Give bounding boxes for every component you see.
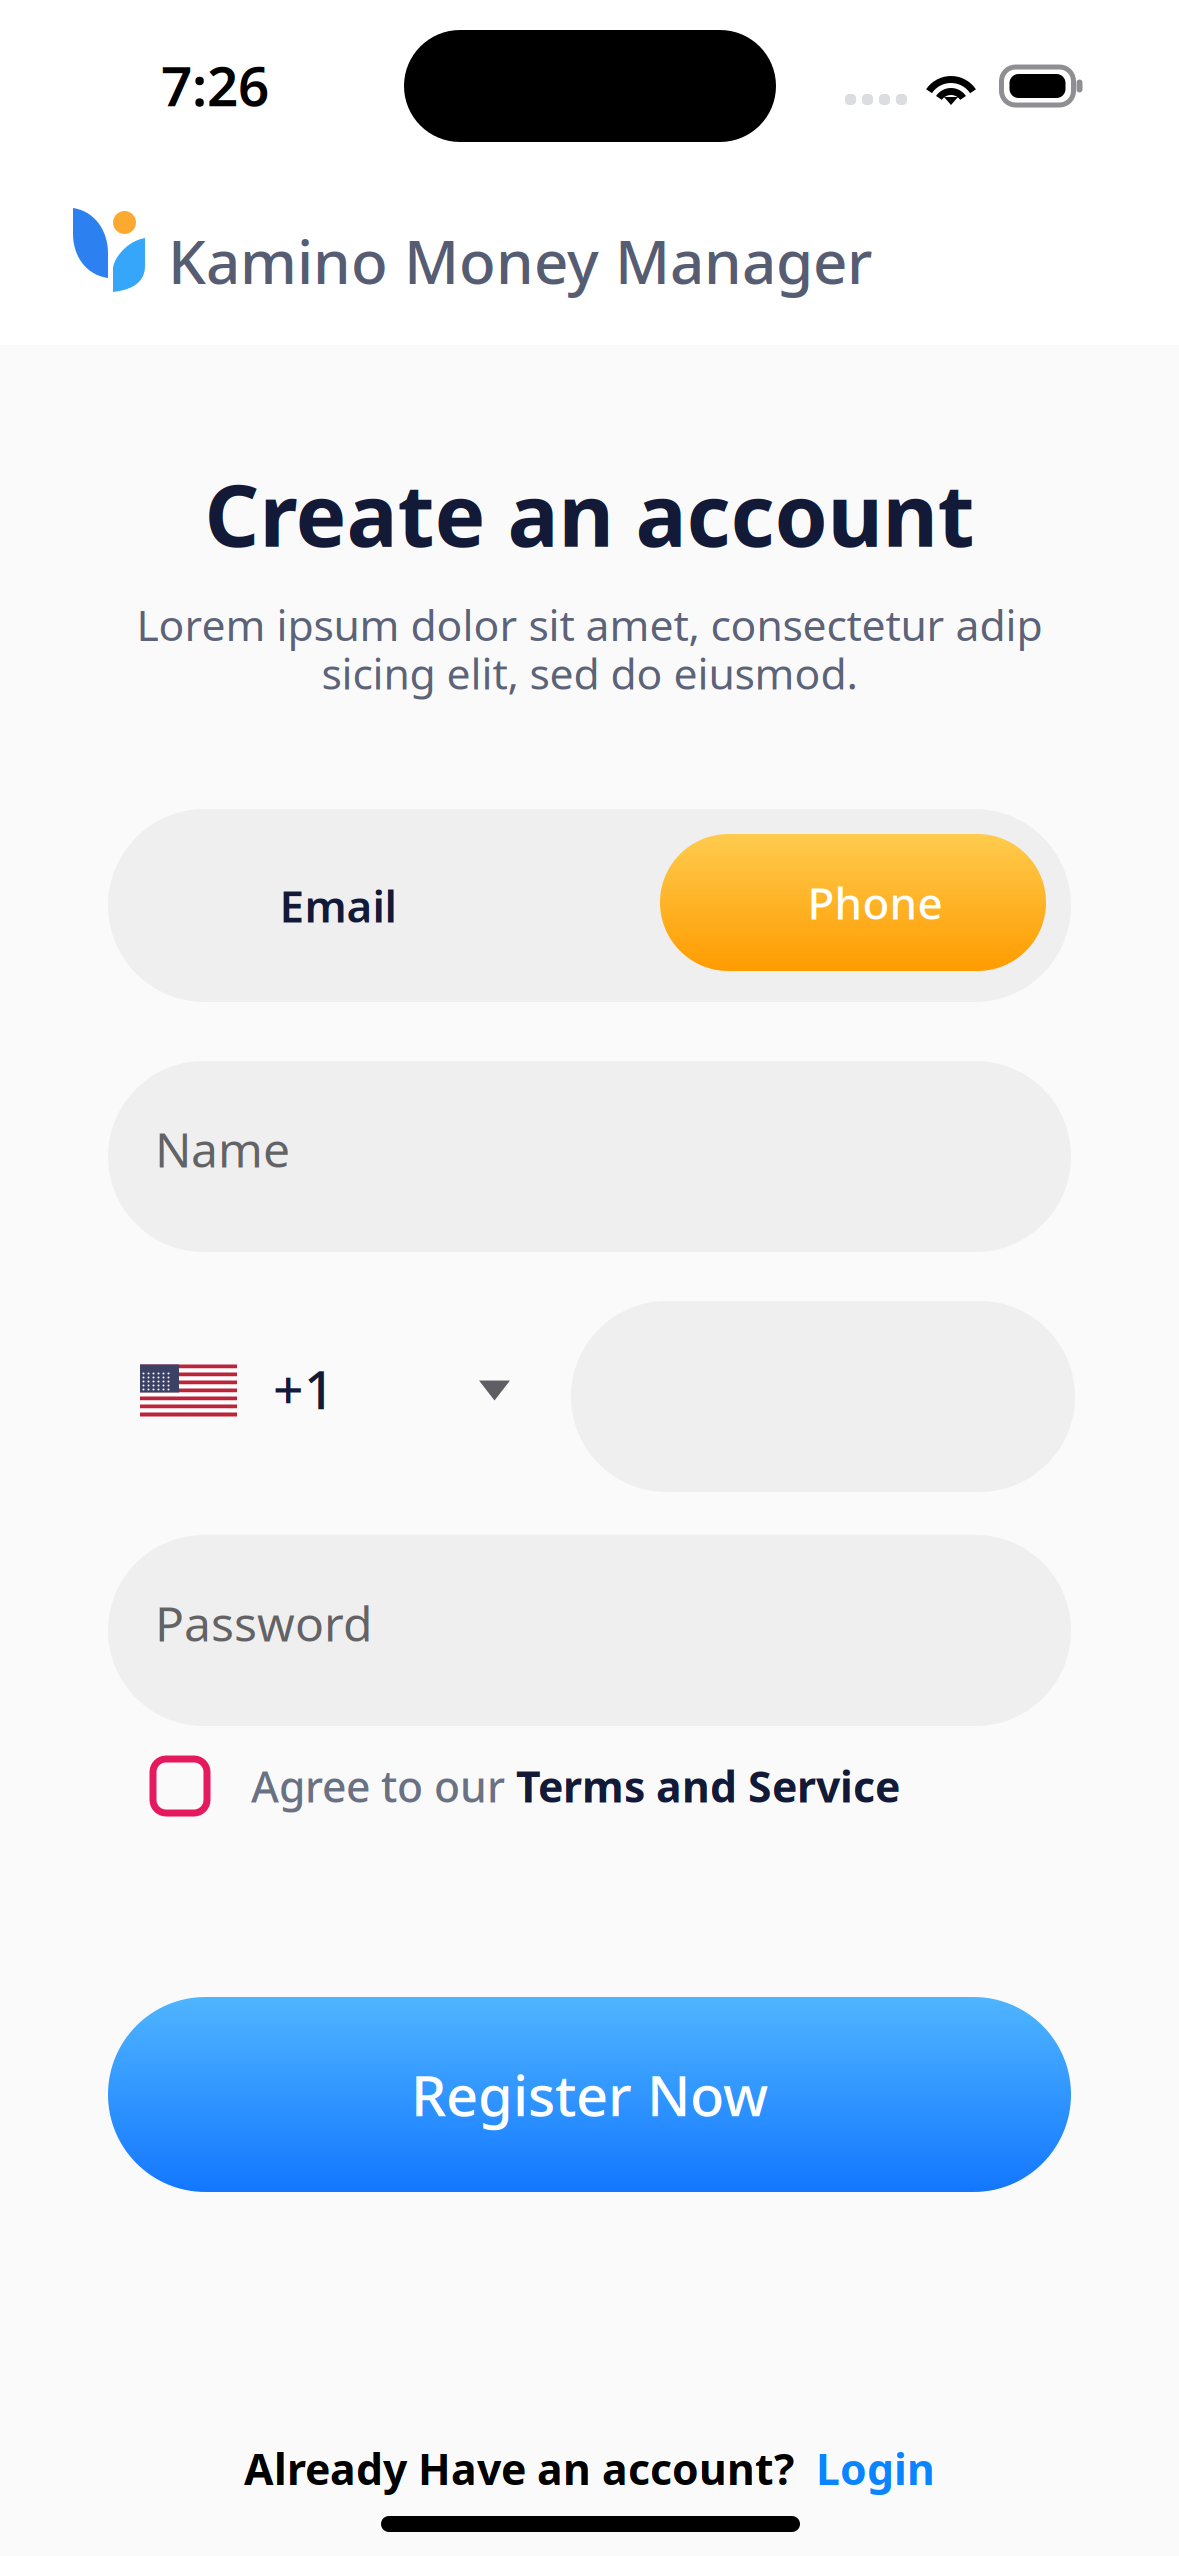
staticText: Agree to our <box>251 1758 516 1814</box>
staticText: 7:26 <box>161 49 269 121</box>
staticText: Already Have an account? <box>244 2440 794 2497</box>
button[interactable]: Country code <box>104 1301 563 1492</box>
staticText: Password <box>155 1591 373 1655</box>
staticText: +1 <box>273 1353 335 1424</box>
staticText: sicing elit, sed do eiusmod. <box>321 645 857 701</box>
staticText: Login <box>816 2440 935 2497</box>
button[interactable]: Login <box>794 2440 935 2497</box>
staticText: Lorem ipsum dolor sit amet, consectetur … <box>136 596 1042 653</box>
staticText: Register Now <box>411 2057 768 2132</box>
staticText: Create an account <box>204 457 974 570</box>
staticText: Phone <box>807 873 942 932</box>
button[interactable]: Phone <box>660 834 1046 971</box>
button[interactable]: Agree to terms <box>142 1748 218 1824</box>
button[interactable]: Email <box>108 809 568 1002</box>
button[interactable]: Agree to our <box>218 1742 900 1830</box>
button[interactable]: Register Now <box>108 1997 1071 2192</box>
staticText: Name <box>155 1117 290 1181</box>
staticText: Terms and Service <box>516 1758 900 1814</box>
staticText: Email <box>279 876 396 935</box>
staticText: Kamino Money Manager <box>168 221 872 301</box>
